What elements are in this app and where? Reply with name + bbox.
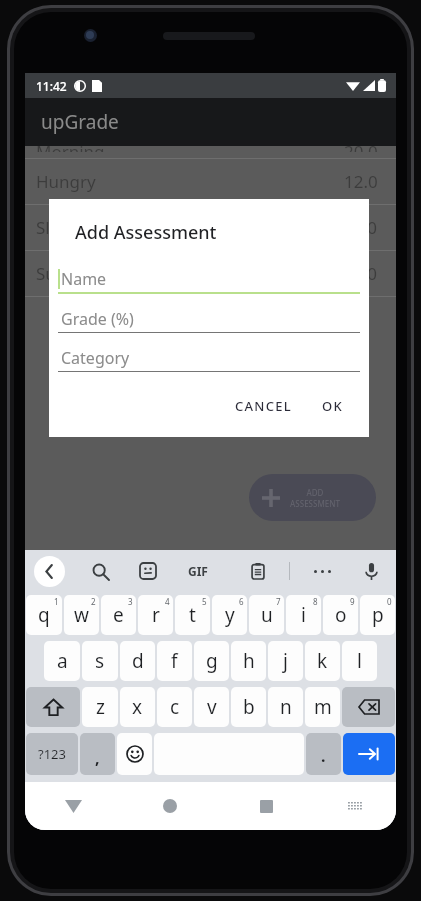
button[interactable]: Grade (%)	[58, 306, 360, 333]
button[interactable]: m	[305, 687, 340, 727]
staticText: b	[243, 694, 255, 720]
button[interactable]: k	[305, 641, 340, 681]
button[interactable]: CANCEL	[227, 390, 301, 422]
staticText: Add Assessment	[75, 220, 217, 245]
staticText: g	[206, 648, 218, 674]
staticText: CANCEL	[235, 397, 293, 415]
staticText: 8.0	[353, 216, 378, 239]
staticText: Grade (%)	[61, 308, 134, 330]
button[interactable]: OK	[314, 390, 352, 422]
button[interactable]: c	[157, 687, 192, 727]
button[interactable]: p	[360, 595, 395, 635]
button[interactable]: Stickers	[131, 554, 165, 588]
staticText: 20.0	[344, 140, 378, 152]
staticText: 6	[239, 596, 244, 607]
staticText: ?123	[38, 745, 66, 763]
staticText: 0	[387, 596, 392, 607]
staticText: 4.0	[353, 262, 378, 285]
staticText: ,	[95, 747, 100, 769]
staticText: 12.0	[344, 170, 378, 193]
staticText: Sunny	[36, 262, 86, 285]
staticText: 7	[276, 596, 281, 607]
button[interactable]: Back	[34, 556, 65, 587]
button[interactable]: t	[175, 595, 210, 635]
button[interactable]: g	[194, 641, 229, 681]
button[interactable]: Clipboard	[241, 554, 275, 588]
button[interactable]: Name	[58, 266, 360, 294]
button[interactable]: f	[157, 641, 192, 681]
staticText: 5	[202, 596, 207, 607]
staticText: upGrade	[41, 109, 119, 135]
staticText: 11:42	[36, 78, 67, 94]
button[interactable]: Home	[122, 782, 218, 830]
staticText: 4	[165, 596, 170, 607]
staticText: r	[152, 602, 160, 628]
staticText: x	[132, 694, 143, 720]
staticText: z	[96, 694, 105, 720]
button[interactable]: Sunny	[25, 251, 396, 296]
button[interactable]: .	[306, 733, 341, 775]
staticText: j	[283, 648, 288, 674]
staticText: Name	[61, 268, 107, 290]
button[interactable]: i	[286, 595, 321, 635]
button[interactable]: ADD ASSESSMENT	[249, 474, 376, 521]
button[interactable]: ,	[80, 733, 115, 775]
button[interactable]: j	[268, 641, 303, 681]
staticText: m	[314, 694, 332, 720]
staticText: 8	[313, 596, 318, 607]
staticText: Hungry	[36, 170, 96, 193]
staticText: v	[207, 694, 217, 720]
button[interactable]: Recents	[218, 782, 314, 830]
staticText: p	[372, 602, 384, 628]
staticText: Category	[61, 347, 130, 369]
button[interactable]: Hungry	[25, 159, 396, 204]
button[interactable]: v	[194, 687, 229, 727]
staticText: d	[132, 648, 144, 674]
button[interactable]: Emoji	[117, 733, 152, 775]
button[interactable]: Shift	[26, 687, 80, 727]
staticText: Sleepy	[36, 216, 88, 239]
button[interactable]: o	[323, 595, 358, 635]
button[interactable]: Search	[83, 554, 117, 588]
button[interactable]: z	[82, 687, 118, 727]
staticText: 9	[350, 596, 355, 607]
button[interactable]: Sleepy	[25, 205, 396, 250]
button[interactable]: GIF	[188, 563, 208, 579]
staticText: i	[301, 602, 306, 628]
button[interactable]: q	[26, 595, 62, 635]
button[interactable]: Category	[58, 345, 360, 372]
button[interactable]: n	[268, 687, 303, 727]
button[interactable]: Voice input	[354, 554, 388, 588]
button[interactable]: b	[231, 687, 266, 727]
staticText: Morning	[36, 140, 105, 152]
button[interactable]: w	[64, 595, 99, 635]
button[interactable]: u	[249, 595, 284, 635]
button[interactable]: y	[212, 595, 247, 635]
staticText: y	[225, 602, 235, 628]
button[interactable]: a	[44, 641, 80, 681]
button[interactable]: d	[120, 641, 155, 681]
button[interactable]: x	[120, 687, 155, 727]
staticText: u	[261, 602, 273, 628]
button[interactable]: e	[101, 595, 136, 635]
button[interactable]: Switch keyboard	[314, 782, 396, 830]
button[interactable]: s	[82, 641, 118, 681]
button[interactable]: h	[231, 641, 266, 681]
staticText: .	[321, 745, 326, 767]
staticText: s	[95, 648, 105, 674]
staticText: 1	[54, 596, 59, 607]
button[interactable]: ?123	[26, 733, 78, 775]
staticText: c	[170, 694, 180, 720]
button[interactable]: More options	[305, 554, 339, 588]
staticText: k	[317, 648, 328, 674]
button[interactable]: l	[342, 641, 377, 681]
staticText: w	[74, 602, 89, 628]
button[interactable]: r	[138, 595, 173, 635]
button[interactable]: Back	[25, 782, 122, 830]
button[interactable]: Next	[343, 733, 395, 775]
staticText: OK	[322, 397, 344, 415]
button[interactable]: Backspace	[342, 687, 395, 727]
staticText: q	[38, 602, 50, 628]
staticText: o	[335, 602, 347, 628]
